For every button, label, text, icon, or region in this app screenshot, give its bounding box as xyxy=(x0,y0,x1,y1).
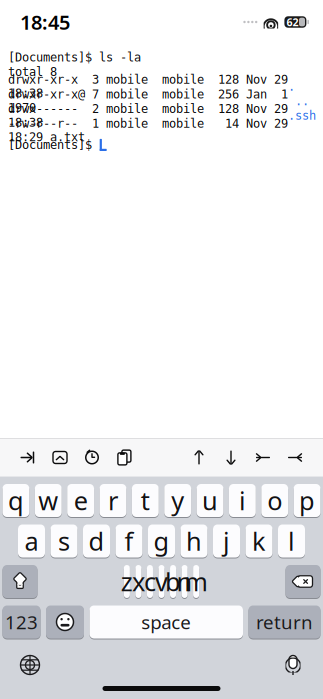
button[interactable]: f xyxy=(115,524,142,558)
staticText: z xyxy=(121,565,133,598)
button[interactable]: Up xyxy=(183,440,215,474)
button[interactable]: h xyxy=(180,524,207,558)
button[interactable]: Tab xyxy=(12,440,44,474)
staticText: c xyxy=(144,565,156,598)
button[interactable]: History xyxy=(76,440,108,474)
staticText: [Documents]$ xyxy=(8,138,99,152)
button[interactable]: d xyxy=(83,524,110,558)
button[interactable]: w xyxy=(35,483,62,517)
button[interactable]: Emoji xyxy=(46,605,84,639)
button[interactable]: t xyxy=(132,483,159,517)
button[interactable]: z xyxy=(124,564,130,598)
button[interactable]: o xyxy=(261,483,288,517)
button[interactable]: Delete xyxy=(285,564,320,598)
staticText: 18:45 xyxy=(20,9,70,35)
button[interactable]: a xyxy=(18,524,45,558)
button[interactable]: v xyxy=(158,564,164,598)
button[interactable]: i xyxy=(229,483,256,517)
button[interactable]: p xyxy=(294,483,321,517)
button[interactable]: y xyxy=(164,483,191,517)
staticText: drwxr-xr-x@ 7 mobile mobile 256 Jan 1 19… xyxy=(8,87,295,115)
staticText: k xyxy=(252,524,266,558)
button[interactable]: u xyxy=(197,483,223,517)
staticText: e xyxy=(74,484,88,517)
staticText: j xyxy=(223,524,230,558)
button[interactable]: l xyxy=(278,524,305,558)
staticText: y xyxy=(171,484,184,517)
staticText: g xyxy=(153,524,169,558)
button[interactable]: s xyxy=(50,524,77,558)
button[interactable]: Shift xyxy=(2,564,37,598)
staticText: m xyxy=(184,565,208,598)
button[interactable]: q xyxy=(2,483,29,517)
staticText: n xyxy=(177,565,193,598)
staticText: r xyxy=(108,484,118,517)
staticText: i xyxy=(239,484,246,517)
button[interactable]: Down xyxy=(215,440,247,474)
button[interactable]: Right xyxy=(279,440,311,474)
staticText: p xyxy=(299,484,315,517)
staticText: return xyxy=(256,610,313,634)
staticText: [Documents]$ ls -la xyxy=(8,50,141,64)
button[interactable]: Dictation xyxy=(271,648,315,682)
button[interactable]: k xyxy=(245,524,272,558)
staticText: x xyxy=(132,565,145,598)
staticText: s xyxy=(58,524,70,558)
staticText: v xyxy=(155,565,168,598)
button[interactable]: j xyxy=(213,524,240,558)
staticText: h xyxy=(186,524,202,558)
staticText: drwxr-xr-x 3 mobile mobile 128 Nov 29 18… xyxy=(8,73,288,100)
button[interactable]: Control xyxy=(44,440,76,474)
staticText: drwx------ 2 mobile mobile 128 Nov 29 18… xyxy=(8,102,288,129)
staticText: b xyxy=(165,565,181,598)
staticText: . xyxy=(288,80,295,93)
button[interactable]: e xyxy=(67,483,94,517)
button[interactable]: Next keyboard xyxy=(8,648,52,682)
staticText: d xyxy=(88,524,104,558)
staticText: total 8 xyxy=(8,65,57,79)
staticText: -rw-r--r-- 1 mobile mobile 14 Nov 29 18:… xyxy=(8,117,288,144)
button[interactable]: r xyxy=(100,483,126,517)
staticText: w xyxy=(38,484,58,517)
staticText: .ssh xyxy=(288,109,316,122)
button[interactable]: 123 xyxy=(2,605,40,639)
staticText: 123 xyxy=(5,610,38,634)
staticText: .. xyxy=(295,94,309,108)
staticText: t xyxy=(141,484,150,517)
staticText: a xyxy=(24,524,38,558)
button[interactable]: Paste xyxy=(108,440,140,474)
staticText: q xyxy=(8,484,24,517)
button[interactable]: n xyxy=(182,564,188,598)
button[interactable]: return xyxy=(248,605,320,639)
staticText: o xyxy=(267,484,282,517)
button[interactable]: c xyxy=(147,564,153,598)
staticText: space xyxy=(141,610,191,634)
staticText: 62 xyxy=(286,15,298,29)
button[interactable]: b xyxy=(170,564,176,598)
button[interactable]: m xyxy=(193,564,199,598)
button[interactable]: x xyxy=(135,564,141,598)
staticText: f xyxy=(124,524,133,558)
button[interactable]: g xyxy=(148,524,175,558)
staticText: u xyxy=(202,484,218,517)
staticText: l xyxy=(288,524,295,558)
button[interactable]: Left xyxy=(247,440,279,474)
button[interactable]: space xyxy=(89,605,243,639)
